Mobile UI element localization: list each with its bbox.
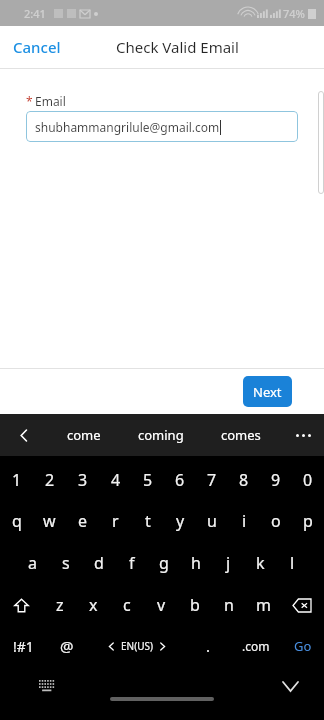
staticText: .com [242, 638, 270, 654]
button[interactable]: Hide keyboard [278, 674, 302, 698]
button[interactable]: Cancel [0, 29, 74, 65]
button[interactable]: m [246, 584, 280, 626]
button[interactable]: c [110, 584, 144, 626]
button[interactable]: . [187, 626, 230, 666]
button[interactable]: n [212, 584, 246, 626]
staticText: d [94, 552, 104, 574]
button[interactable]: b [178, 584, 212, 626]
staticText: 0 [303, 469, 313, 491]
staticText: q [12, 510, 22, 532]
button[interactable]: a [16, 542, 49, 584]
staticText: * [26, 93, 33, 109]
button[interactable]: 4 [99, 460, 132, 500]
staticText: v [157, 594, 166, 616]
staticText: h [191, 552, 201, 574]
staticText: 1 [12, 469, 22, 491]
staticText: come [67, 426, 101, 444]
button[interactable]: Go [281, 626, 324, 666]
staticText: 7 [207, 469, 217, 491]
staticText: coming [138, 426, 184, 444]
button[interactable]: 1 [0, 460, 33, 500]
staticText: y [176, 510, 185, 532]
button[interactable]: !#1 [0, 626, 47, 666]
button[interactable]: h [180, 542, 212, 584]
staticText: f [129, 552, 135, 574]
staticText: w [43, 510, 56, 532]
staticText: 4 [111, 469, 121, 491]
staticText: c [123, 594, 131, 616]
button[interactable]: l [276, 542, 308, 584]
staticText: z [56, 594, 64, 616]
button[interactable]: y [164, 500, 196, 542]
staticText: s [62, 552, 70, 574]
button[interactable]: v [144, 584, 178, 626]
button[interactable]: 7 [196, 460, 228, 500]
button[interactable]: coming [128, 420, 194, 450]
staticText: . [206, 636, 211, 656]
button[interactable]: come [57, 420, 111, 450]
button[interactable]: f [115, 542, 148, 584]
staticText: Email [35, 93, 66, 109]
staticText: a [28, 552, 37, 574]
button[interactable]: .com [230, 626, 281, 666]
staticText: l [290, 552, 295, 574]
button[interactable]: 2 [33, 460, 66, 500]
staticText: i [242, 510, 247, 532]
button[interactable]: 8 [228, 460, 260, 500]
button[interactable]: j [212, 542, 244, 584]
staticText: p [303, 510, 313, 532]
button[interactable]: 5 [132, 460, 164, 500]
staticText: comes [221, 426, 261, 444]
staticText: e [78, 510, 88, 532]
button[interactable]: EN(US) [86, 626, 187, 666]
button[interactable]: Backspace [280, 584, 324, 626]
button[interactable]: e [66, 500, 99, 542]
button[interactable]: d [82, 542, 115, 584]
staticText: 5 [143, 469, 153, 491]
staticText: g [159, 552, 169, 574]
button[interactable]: Keyboard settings [36, 674, 58, 696]
staticText: Next [253, 383, 282, 401]
button[interactable]: x [76, 584, 110, 626]
staticText: b [190, 594, 200, 616]
button[interactable]: w [33, 500, 66, 542]
button[interactable]: z [43, 584, 76, 626]
button[interactable]: 9 [260, 460, 292, 500]
staticText: 6 [175, 469, 185, 491]
button[interactable]: r [99, 500, 132, 542]
button[interactable]: 3 [66, 460, 99, 500]
button[interactable]: 0 [292, 460, 324, 500]
button[interactable]: s [49, 542, 82, 584]
button[interactable]: g [148, 542, 180, 584]
button[interactable]: u [196, 500, 228, 542]
staticText: @ [60, 636, 74, 656]
button[interactable]: t [132, 500, 164, 542]
staticText: r [112, 510, 119, 532]
button[interactable]: Previous suggestions [8, 419, 40, 451]
button[interactable]: o [260, 500, 292, 542]
staticText: m [256, 594, 271, 616]
staticText: t [145, 510, 151, 532]
staticText: Check Valid Email [116, 37, 239, 57]
button[interactable]: Next [243, 376, 292, 407]
button[interactable]: shubhammangrilule@gmail.com [26, 111, 298, 142]
button[interactable]: comes [211, 420, 271, 450]
button[interactable]: q [0, 500, 33, 542]
staticText: Go [294, 637, 312, 655]
button[interactable]: 6 [164, 460, 196, 500]
staticText: u [207, 510, 217, 532]
staticText: Cancel [13, 37, 61, 57]
staticText: n [224, 594, 234, 616]
button[interactable]: i [228, 500, 260, 542]
staticText: j [226, 552, 231, 574]
button[interactable]: More options [288, 420, 318, 450]
staticText: k [256, 552, 265, 574]
staticText: o [271, 510, 281, 532]
staticText: 74% [283, 6, 305, 21]
button[interactable]: Shift [0, 584, 43, 626]
staticText: 8 [239, 469, 249, 491]
button[interactable]: p [292, 500, 324, 542]
button[interactable]: k [244, 542, 276, 584]
button[interactable]: @ [47, 626, 86, 666]
staticText: !#1 [13, 637, 34, 656]
